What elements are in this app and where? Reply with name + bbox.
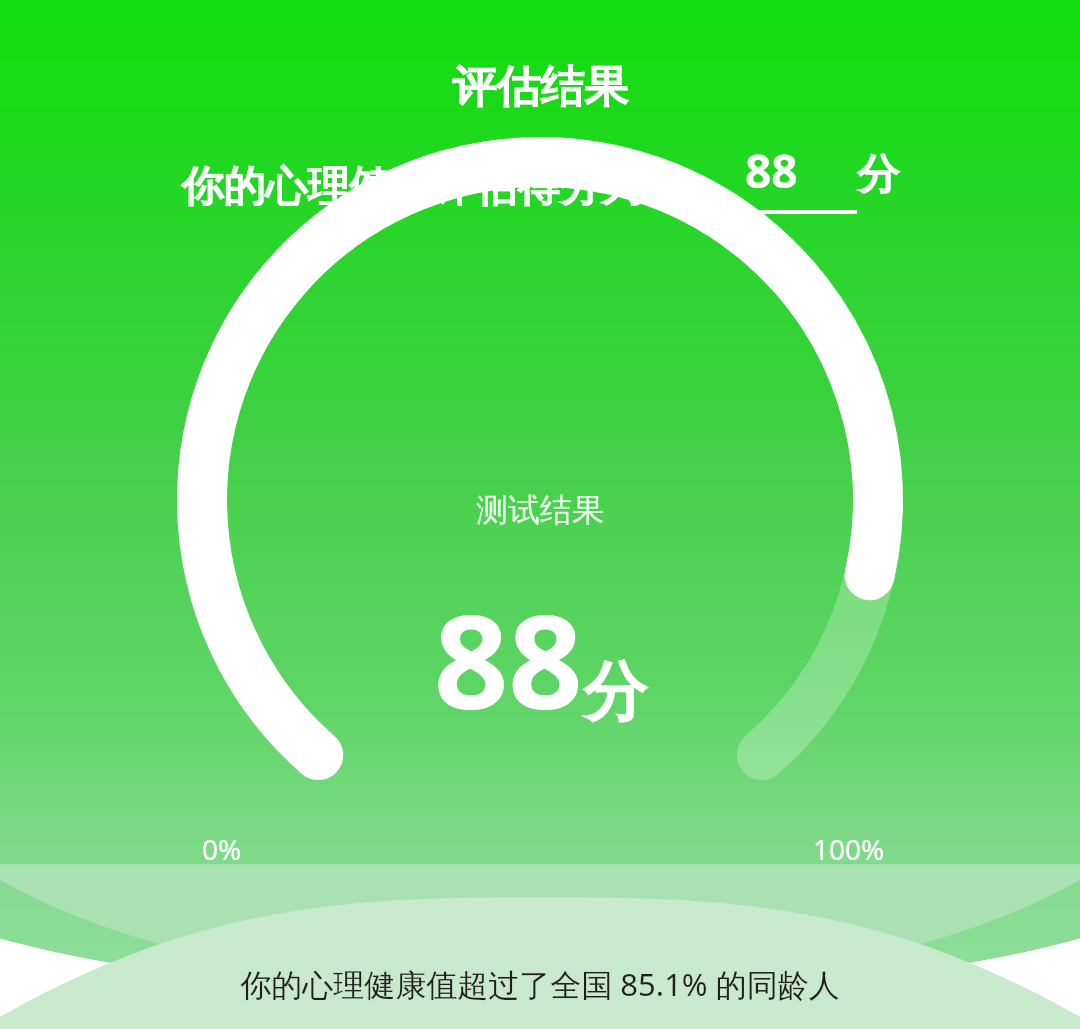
staticText: 你的心理健康值超过了全国 85.1% 的同龄人 — [240, 963, 840, 1005]
staticText: 88 — [745, 139, 798, 202]
staticText: 0% — [202, 830, 242, 868]
staticText: 100% — [813, 830, 885, 868]
staticText: 88 — [434, 570, 583, 747]
staticText: 分 — [583, 652, 647, 733]
staticText: 评估结果 — [452, 60, 628, 115]
staticText: 你的心理健康评估得分为： — [181, 161, 685, 214]
button[interactable]: 你的心理健康值超过了全国 85.1% 的同龄人 — [0, 963, 1080, 1005]
staticText: 分 — [857, 149, 899, 202]
staticText: 测试结果 — [476, 490, 604, 530]
